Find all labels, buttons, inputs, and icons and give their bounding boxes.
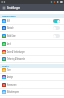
staticText: Anzeige [7,75,13,79]
staticText: Homescreen [7,83,17,87]
button[interactable]: Navigate up [2,6,6,10]
button[interactable]: Switch off [53,26,60,30]
button[interactable]: Daten & Verbindungen [0,48,64,56]
button[interactable]: Wi-Fi [0,17,64,25]
staticText: Einstellungen [7,6,20,10]
button[interactable]: Töne [0,66,64,74]
staticText: VERBINDUNGEN [2,14,16,18]
staticText: Wi-Fi [7,19,10,23]
button[interactable]: Anzeige [0,73,64,81]
staticText: Bildschirmsperre [7,90,19,94]
staticText: Tethering & Netzwerke [7,57,25,61]
button[interactable]: Homescreen [0,81,64,89]
button[interactable]: Switch on [53,19,60,23]
staticText: Anruf [7,42,11,46]
staticText: Daten & Verbindungen [7,50,25,54]
button[interactable]: Anruf [0,40,64,48]
staticText: Mobile Daten [7,34,16,38]
button[interactable]: Bildschirmsperre [0,88,64,96]
button[interactable]: Switch off [53,34,60,38]
button[interactable]: Mobile Daten [0,32,64,40]
button[interactable]: Tethering & Netzwerke [0,55,64,63]
staticText: Töne [7,68,11,72]
staticText: Bluetooth [7,26,14,30]
button[interactable]: Bluetooth [0,24,64,32]
staticText: GERÄT [2,64,9,68]
